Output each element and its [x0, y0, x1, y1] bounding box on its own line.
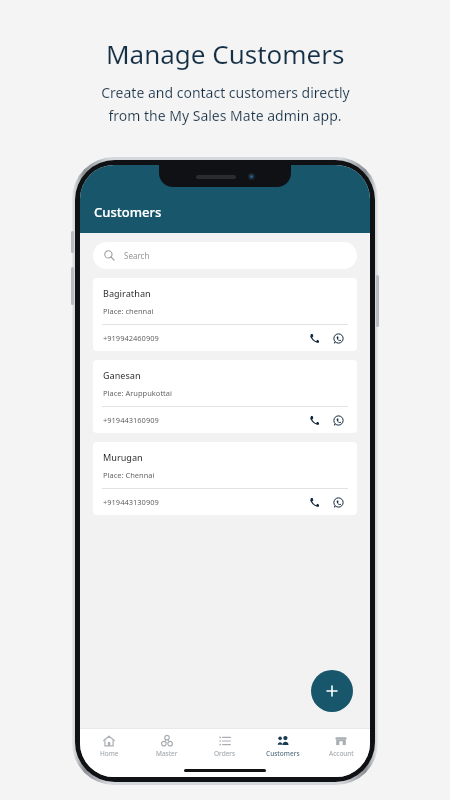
button[interactable]: Customers [254, 729, 312, 763]
button[interactable]: Orders [196, 729, 254, 763]
button[interactable]: WhatsApp [329, 329, 347, 347]
staticText: Home [100, 749, 119, 758]
button[interactable]: Master [138, 729, 196, 763]
button[interactable]: Ganesan [93, 360, 357, 433]
staticText: +919942460909 [103, 333, 159, 343]
staticText: Murugan [103, 451, 143, 463]
button[interactable]: WhatsApp [329, 411, 347, 429]
button[interactable]: WhatsApp [329, 493, 347, 511]
button[interactable]: Call [305, 411, 323, 429]
staticText: +919443160909 [103, 415, 159, 425]
button[interactable]: Add customer [311, 670, 353, 712]
staticText: Account [329, 749, 354, 758]
button[interactable]: Home [80, 729, 138, 763]
button[interactable]: Call [305, 329, 323, 347]
staticText: Customers [266, 749, 300, 758]
staticText: Place: Chennai [103, 470, 155, 480]
staticText: Ganesan [103, 369, 141, 381]
button[interactable]: Bagirathan [93, 278, 357, 351]
staticText: Orders [214, 749, 236, 758]
staticText: Place: chennai [103, 306, 154, 316]
staticText: Search [124, 250, 150, 261]
button[interactable]: Account [312, 729, 370, 763]
staticText: Master [156, 749, 178, 758]
button[interactable]: Murugan [93, 442, 357, 515]
staticText: Bagirathan [103, 287, 151, 299]
staticText: Create and contact customers directly [101, 83, 350, 102]
staticText: Customers [94, 203, 162, 221]
staticText: +919443130909 [103, 497, 159, 507]
button[interactable]: Search [93, 242, 357, 269]
button[interactable]: Call [305, 493, 323, 511]
staticText: Manage Customers [106, 36, 345, 71]
staticText: from the My Sales Mate admin app. [108, 106, 342, 125]
staticText: Place: Aruppukottai [103, 388, 172, 398]
